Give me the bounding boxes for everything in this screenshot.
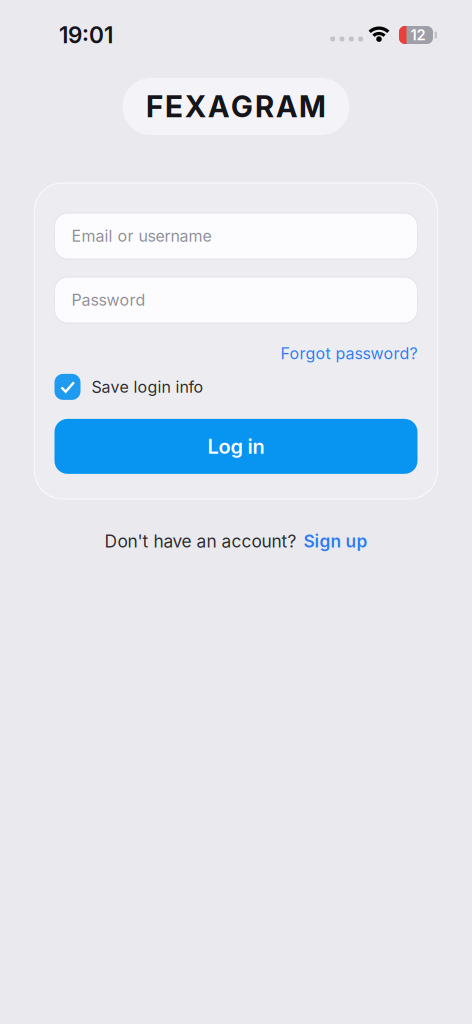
staticText: Sign up: [303, 531, 367, 551]
button[interactable]: Forgot password?: [280, 344, 417, 363]
staticText: 12: [410, 26, 425, 44]
staticText: Log in: [207, 435, 264, 458]
staticText: Forgot password?: [280, 344, 417, 363]
staticText: 19:01: [59, 22, 113, 48]
button[interactable]: Sign up: [303, 531, 367, 551]
staticText: Password: [71, 291, 145, 309]
staticText: Email or username: [71, 227, 211, 245]
staticText: Save login info: [91, 377, 203, 396]
staticText: F E X A G R A M: [146, 89, 326, 124]
staticText: Don't have an account?: [104, 531, 296, 551]
button[interactable]: Log in: [54, 419, 417, 474]
button[interactable]: Save login info: [54, 374, 203, 400]
